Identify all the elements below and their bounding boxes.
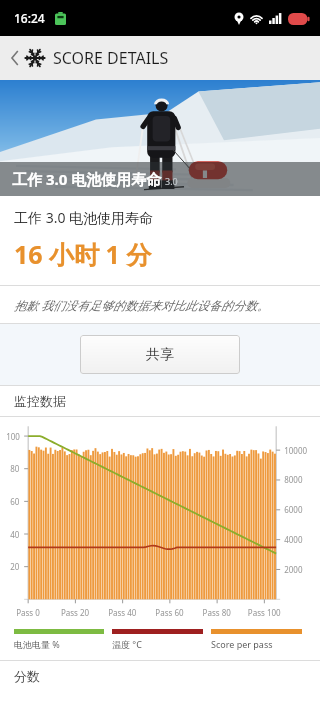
staticText: SCORE DETAILS: [53, 47, 169, 69]
staticText: 监控数据: [14, 393, 66, 409]
button[interactable]: Back: [6, 44, 24, 72]
staticText: 16:24: [14, 10, 45, 26]
staticText: 抱歉 我们没有足够的数据来对比此设备的分数。: [14, 297, 270, 313]
staticText: 3.0: [165, 175, 178, 187]
button[interactable]: 共享: [80, 335, 240, 374]
staticText: 分数: [14, 668, 40, 684]
staticText: 电池电量 %: [14, 638, 60, 650]
staticText: 共享: [146, 346, 174, 364]
staticText: Score per pass: [211, 638, 273, 650]
staticText: 温度 °C: [112, 638, 142, 650]
staticText: 工作 3.0 电池使用寿命: [12, 169, 162, 189]
staticText: 16 小时 1 分: [14, 237, 152, 271]
staticText: 工作 3.0 电池使用寿命: [14, 208, 154, 227]
